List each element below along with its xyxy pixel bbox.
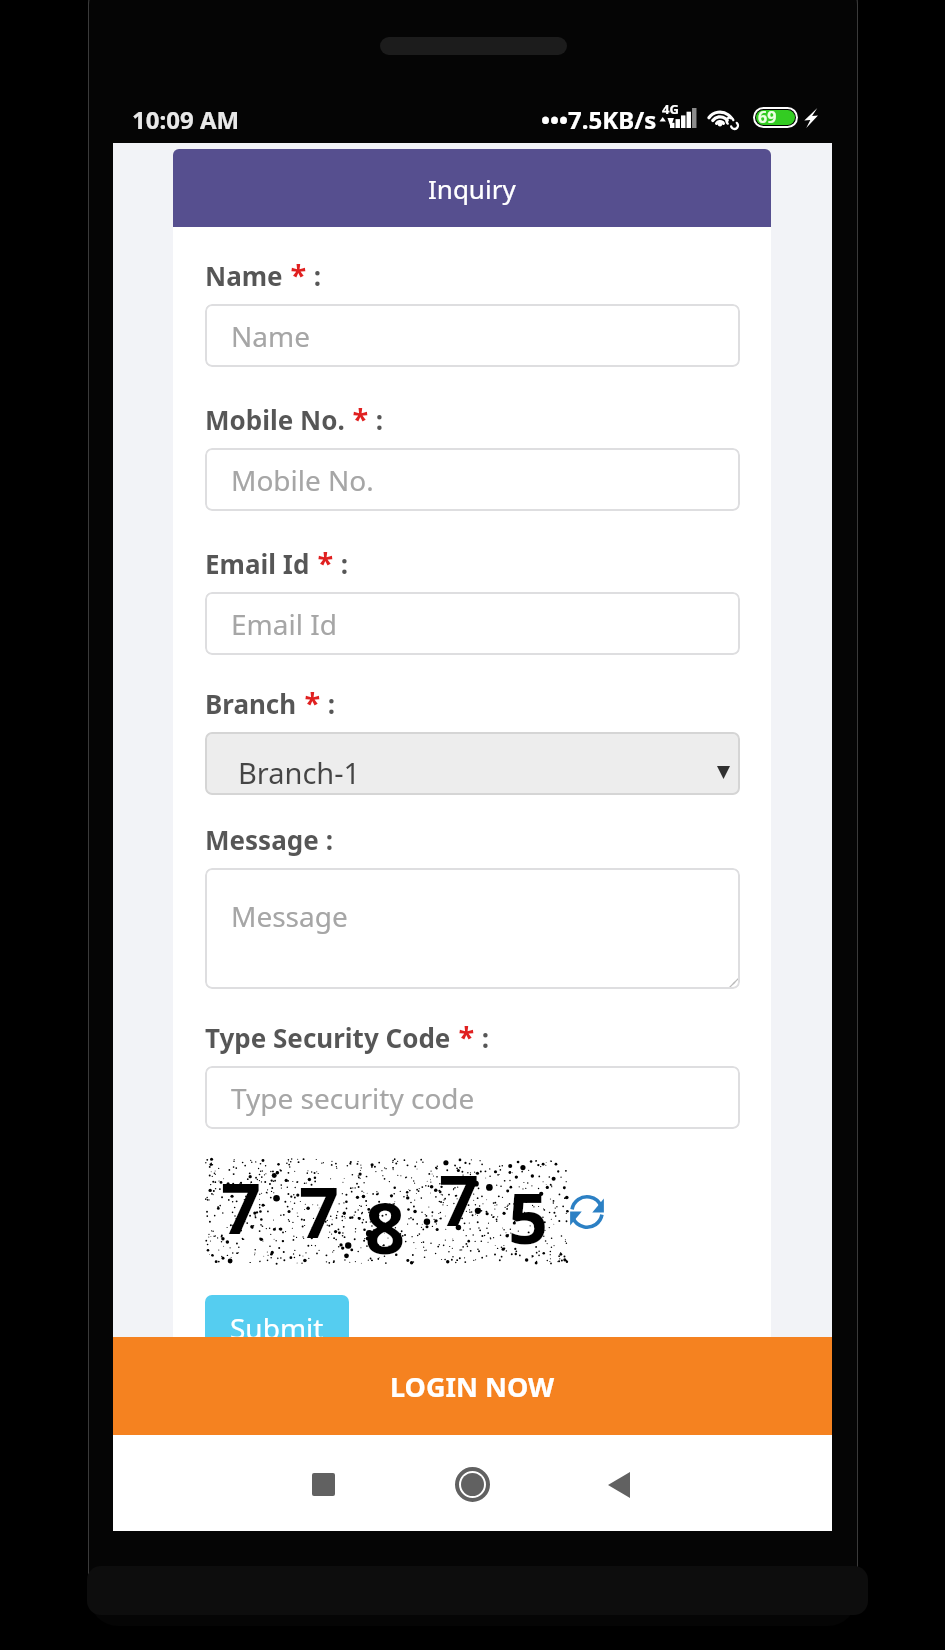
staticText: * <box>310 543 334 582</box>
staticText: * <box>297 683 321 722</box>
staticText: Inquiry <box>428 171 516 206</box>
staticText: Name <box>205 258 283 293</box>
staticText: Mobile No. <box>205 402 345 437</box>
staticText: Branch-1 <box>238 753 361 792</box>
button[interactable]: Back <box>586 1452 651 1517</box>
button[interactable]: Refresh captcha <box>560 1185 614 1239</box>
staticText: Message <box>231 897 348 935</box>
staticText: Email Id <box>231 605 337 643</box>
button[interactable]: LOGIN NOW <box>113 1337 832 1435</box>
staticText: 69 <box>758 106 777 127</box>
button[interactable]: Mobile No. <box>205 448 740 511</box>
staticText: 7 <box>221 1159 262 1254</box>
staticText: : <box>319 822 334 857</box>
staticText: 5 <box>508 1169 549 1264</box>
staticText: Name <box>231 317 310 355</box>
staticText: : <box>475 1020 490 1055</box>
staticText: Mobile No. <box>231 461 374 499</box>
staticText: Type Security Code <box>205 1020 451 1055</box>
staticText: Email Id <box>205 546 310 581</box>
button[interactable]: Name <box>205 304 740 367</box>
staticText: : <box>334 546 349 581</box>
staticText: * <box>345 399 369 438</box>
button[interactable]: Type security code <box>205 1066 740 1129</box>
staticText: * <box>451 1017 475 1056</box>
staticText: * <box>283 255 307 294</box>
staticText: : <box>321 686 336 721</box>
staticText: 8 <box>365 1179 406 1274</box>
staticText: 4G <box>662 100 679 118</box>
staticText: Branch <box>205 686 297 721</box>
staticText: •••7.5KB/s <box>541 103 657 136</box>
button[interactable]: Email Id <box>205 592 740 655</box>
button[interactable]: Branch-1 <box>205 732 740 795</box>
staticText: Message <box>205 822 319 857</box>
staticText: LOGIN NOW <box>390 1368 555 1405</box>
button[interactable]: Submit <box>205 1295 349 1361</box>
staticText: Submit <box>230 1309 324 1347</box>
staticText: 7 <box>299 1163 340 1258</box>
staticText: : <box>307 258 322 293</box>
staticText: 10:09 AM <box>132 103 240 136</box>
staticText: 7 <box>439 1151 480 1246</box>
button[interactable]: Message <box>205 868 740 989</box>
button[interactable]: Home <box>440 1452 505 1517</box>
staticText: Type security code <box>231 1079 475 1117</box>
staticText: : <box>369 402 384 437</box>
button[interactable]: Recents <box>291 1452 356 1517</box>
